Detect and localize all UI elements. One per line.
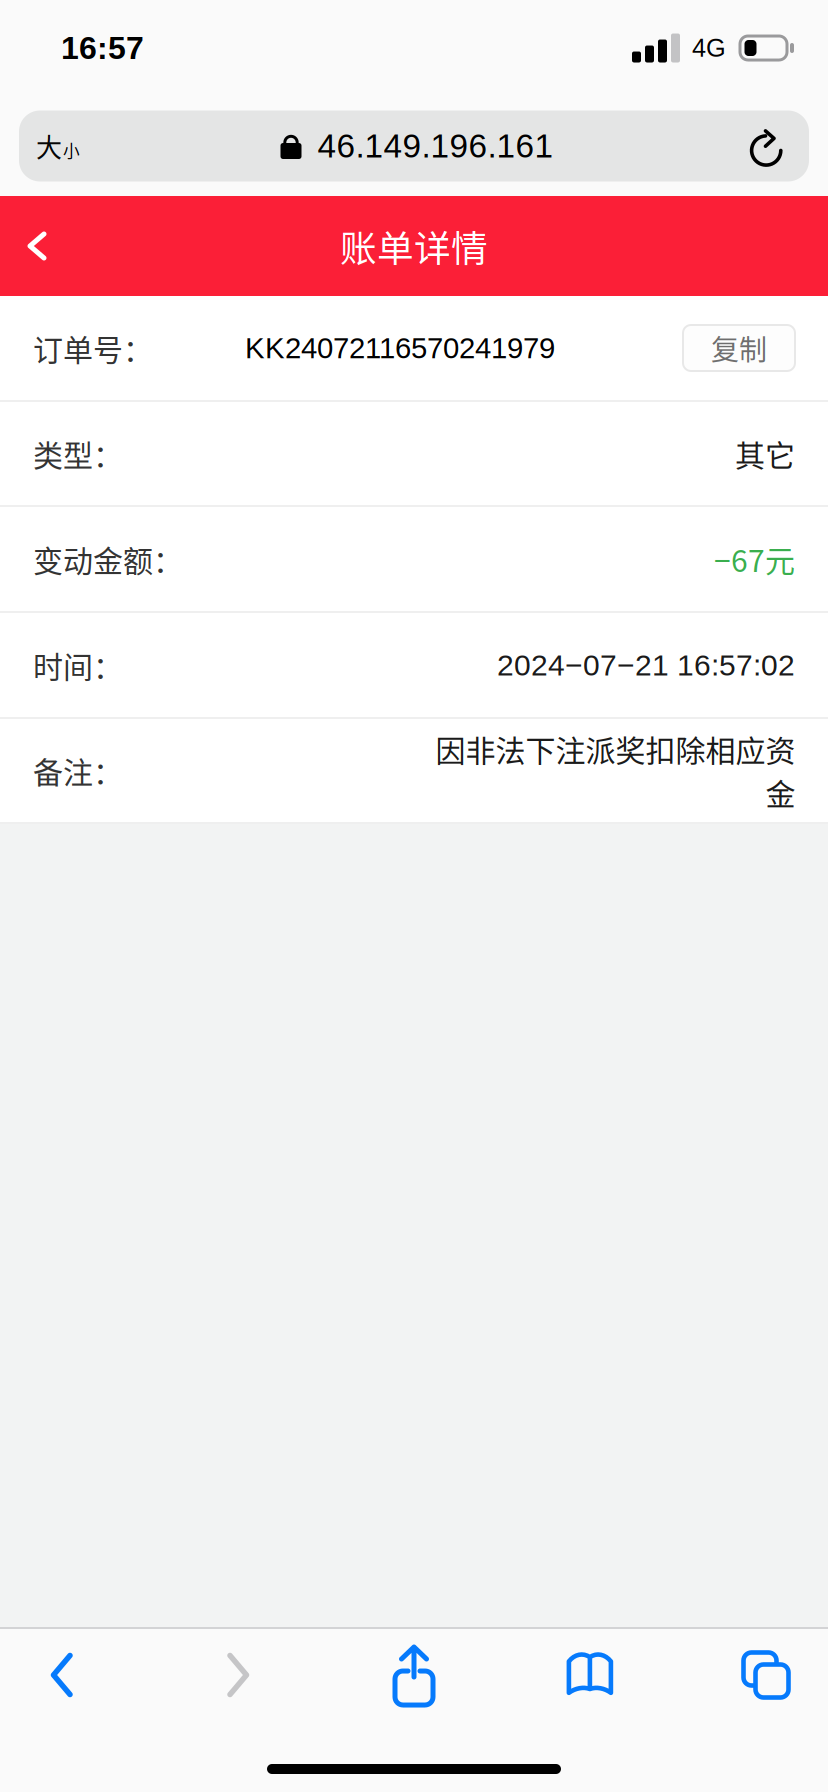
staticText: 复制 [711,328,767,368]
button[interactable]: Share [371,1629,457,1721]
staticText: 备注： [33,749,123,792]
button[interactable]: 大 [19,110,149,181]
button[interactable]: 复制 [683,325,795,371]
staticText: 账单详情 [340,219,488,273]
staticText: 订单号： [33,326,153,370]
button[interactable]: Back [0,196,74,296]
staticText: 因非法下注派奖扣除相应资金 [435,727,795,814]
staticText: 时间： [33,643,123,687]
staticText: 2024−07−21 16:57:02 [497,648,795,682]
staticText: 46.149.196.161 [317,127,553,165]
staticText: 4G [692,34,726,62]
staticText: −67元 [714,537,795,581]
button[interactable]: Back [19,1629,105,1721]
staticText: 类型： [33,432,123,475]
staticText: 大 [36,127,62,165]
staticText: 小 [63,138,80,162]
button[interactable]: Bookmarks [547,1629,633,1721]
staticText: 变动金额： [33,537,183,581]
button[interactable]: Reload [719,110,809,181]
staticText: 16:57 [61,30,144,66]
staticText: 其它 [735,432,795,475]
staticText: KK24072116570241979 [245,332,555,364]
button[interactable]: Tabs [723,1629,809,1721]
button[interactable]: Forward [195,1629,281,1721]
